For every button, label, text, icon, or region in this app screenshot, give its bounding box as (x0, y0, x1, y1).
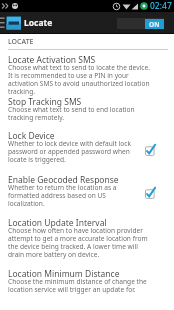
staticText: Choose what text to send to end location… (8, 105, 152, 122)
staticText: Choose the minimum distance of change th… (8, 277, 152, 294)
button[interactable]: Navigate up (0, 12, 22, 34)
staticText: Location Update Interval (8, 217, 107, 229)
staticText: Locate Activation SMS (8, 54, 96, 66)
staticText: Enable Geocoded Response (8, 174, 119, 186)
button[interactable]: Stop Tracking SMS (0, 0, 174, 17)
staticText: 02:47 (150, 0, 172, 12)
button[interactable]: Enable Geocoded Response (0, 0, 174, 25)
button[interactable]: Locate Activation SMS (0, 0, 174, 33)
staticText: LOCATE (8, 37, 34, 47)
staticText: Locate (24, 17, 53, 29)
button[interactable]: Location Minimum Distance (0, 0, 174, 17)
staticText: Choose how often to have location provid… (8, 226, 152, 259)
staticText: Lock Device (8, 130, 55, 142)
button[interactable]: Toggle Locate on or off (117, 18, 164, 29)
staticText: Choose what text to send to locate the d… (8, 63, 152, 96)
staticText: ON (149, 20, 160, 29)
staticText: Whether to lock device with default lock… (8, 139, 137, 164)
button[interactable]: Lock Device (0, 0, 174, 25)
button[interactable]: Location Update Interval (0, 0, 174, 33)
staticText: Stop Tracking SMS (8, 96, 82, 108)
staticText: Location Minimum Distance (8, 268, 120, 280)
staticText: Whether to return the location as a form… (8, 183, 137, 208)
